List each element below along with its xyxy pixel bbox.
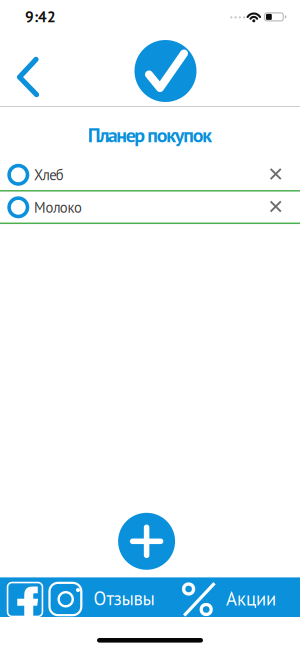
button[interactable]: Акции: [178, 578, 278, 617]
button[interactable]: Отметить Хлеб: [7, 164, 29, 186]
button[interactable]: Facebook: [7, 582, 43, 617]
button[interactable]: Instagram: [48, 582, 82, 616]
button[interactable]: Отзывы: [93, 586, 154, 610]
staticText: Планер покупок: [88, 122, 212, 148]
button[interactable]: Добавить: [118, 513, 175, 570]
button[interactable]: Назад: [6, 55, 50, 99]
button[interactable]: Готово: [134, 40, 196, 102]
button[interactable]: Удалить Хлеб: [261, 159, 291, 189]
staticText: 9:42: [25, 7, 56, 26]
button[interactable]: Отметить Молоко: [7, 196, 29, 218]
staticText: Хлеб: [34, 165, 64, 184]
staticText: Акции: [226, 586, 276, 611]
staticText: Молоко: [34, 198, 82, 217]
staticText: Отзывы: [93, 586, 154, 610]
button[interactable]: Удалить Молоко: [261, 191, 291, 221]
